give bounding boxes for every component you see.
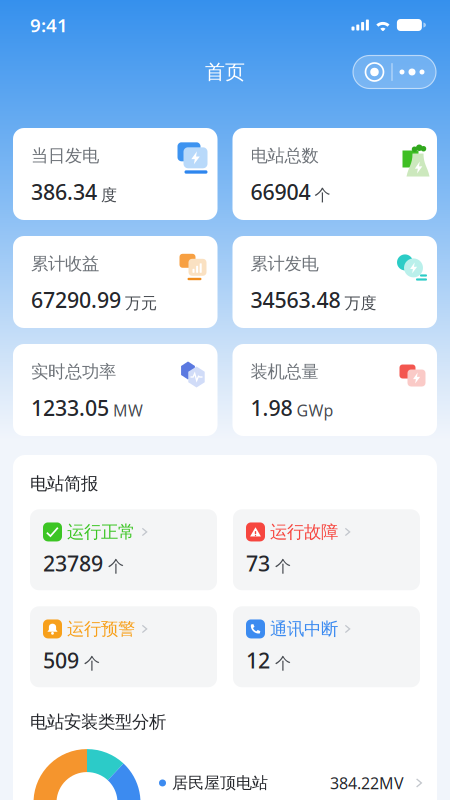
staticText: 运行正常 [67,521,135,543]
staticText: 73 [246,549,270,577]
staticText: 34563.48 [250,286,340,314]
staticText: 386.34 [31,178,97,206]
staticText: 个 [84,654,100,673]
staticText: 累计收益 [31,253,99,274]
staticText: 万元 [125,293,157,313]
staticText: 当日发电 [31,145,99,166]
staticText: 个 [275,557,291,576]
button[interactable]: Mini program menu [353,55,436,88]
button[interactable]: 电站总数 [232,128,437,220]
staticText: 累计发电 [250,253,318,274]
staticText: 1.98 [250,394,292,422]
staticText: GWp [296,400,333,421]
staticText: 12 [246,646,270,674]
staticText: 装机总量 [250,361,318,382]
button[interactable]: 当日发电 [13,128,217,220]
staticText: 运行故障 [270,521,338,543]
staticText: 23789 [43,549,103,577]
button[interactable]: 居民屋顶电站 [159,772,422,793]
button[interactable]: 装机总量 [232,344,437,436]
button[interactable]: 累计收益 [13,236,217,328]
staticText: MW [113,400,143,421]
staticText: 个 [314,185,330,205]
staticText: 首页 [205,60,245,84]
staticText: 67290.99 [31,286,121,314]
button[interactable]: 运行预警 [30,606,217,687]
staticText: 个 [108,557,124,576]
staticText: 1233.05 [31,394,109,422]
button[interactable]: 累计发电 [232,236,437,328]
button[interactable]: 实时总功率 [13,344,217,436]
button[interactable]: 运行故障 [233,509,420,590]
staticText: 509 [43,646,79,674]
staticText: 度 [101,185,117,205]
staticText: 9:41 [30,13,68,37]
staticText: 66904 [250,178,310,206]
button[interactable]: 通讯中断 [233,606,420,687]
staticText: 通讯中断 [270,618,338,640]
staticText: 实时总功率 [31,361,116,382]
staticText: 居民屋顶电站 [172,773,268,793]
button[interactable]: 运行正常 [30,509,217,590]
staticText: 个 [275,654,291,673]
staticText: 电站安装类型分析 [30,711,166,733]
staticText: 384.22MV [330,772,404,793]
staticText: 电站简报 [30,473,98,494]
staticText: 万度 [344,293,376,313]
staticText: 运行预警 [67,618,135,640]
staticText: 电站总数 [250,145,318,166]
